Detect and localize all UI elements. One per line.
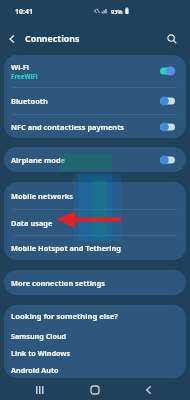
staticText: 93% [111, 8, 123, 16]
staticText: Airplane mode [11, 155, 65, 165]
staticText: Wi-Fi [11, 62, 29, 72]
button[interactable]: Android Auto [4, 361, 186, 378]
button[interactable]: Toggle [160, 122, 175, 132]
staticText: Samsung Cloud [11, 331, 67, 341]
button[interactable]: Navigate up [3, 30, 21, 48]
button[interactable]: Link to Windows [4, 344, 186, 361]
staticText: Data usage [11, 218, 53, 228]
button[interactable]: Wi-Fi [4, 55, 186, 87]
button[interactable]: Search [163, 30, 181, 48]
staticText: Bluetooth [11, 96, 48, 106]
button[interactable]: Airplane mode [4, 147, 186, 172]
button[interactable]: Mobile networks [4, 182, 186, 209]
staticText: Android Auto [11, 365, 59, 375]
button[interactable]: Toggle [160, 96, 175, 106]
button[interactable]: More connection settings [4, 270, 186, 295]
staticText: Connections [25, 33, 80, 45]
button[interactable]: Samsung Cloud [4, 327, 186, 344]
button[interactable]: Toggle [160, 155, 175, 165]
button[interactable]: NFC and contactless payments [4, 115, 186, 138]
button[interactable]: Mobile Hotspot and Tethering [4, 236, 186, 260]
staticText: Looking for something else? [11, 311, 118, 321]
button[interactable]: Back [140, 382, 156, 398]
button[interactable]: Toggle [160, 66, 175, 76]
button[interactable]: Home [87, 382, 103, 398]
button[interactable]: Bluetooth [4, 88, 186, 114]
button[interactable]: Data usage [4, 210, 186, 235]
staticText: More connection settings [11, 278, 106, 288]
staticText: Link to Windows [11, 348, 71, 358]
button[interactable]: Recent apps [32, 382, 48, 398]
staticText: Mobile networks [11, 191, 73, 201]
staticText: FreeWiFi [11, 72, 38, 80]
staticText: NFC and contactless payments [11, 122, 125, 132]
staticText: 10:41 [15, 7, 33, 17]
staticText: Mobile Hotspot and Tethering [11, 243, 122, 253]
